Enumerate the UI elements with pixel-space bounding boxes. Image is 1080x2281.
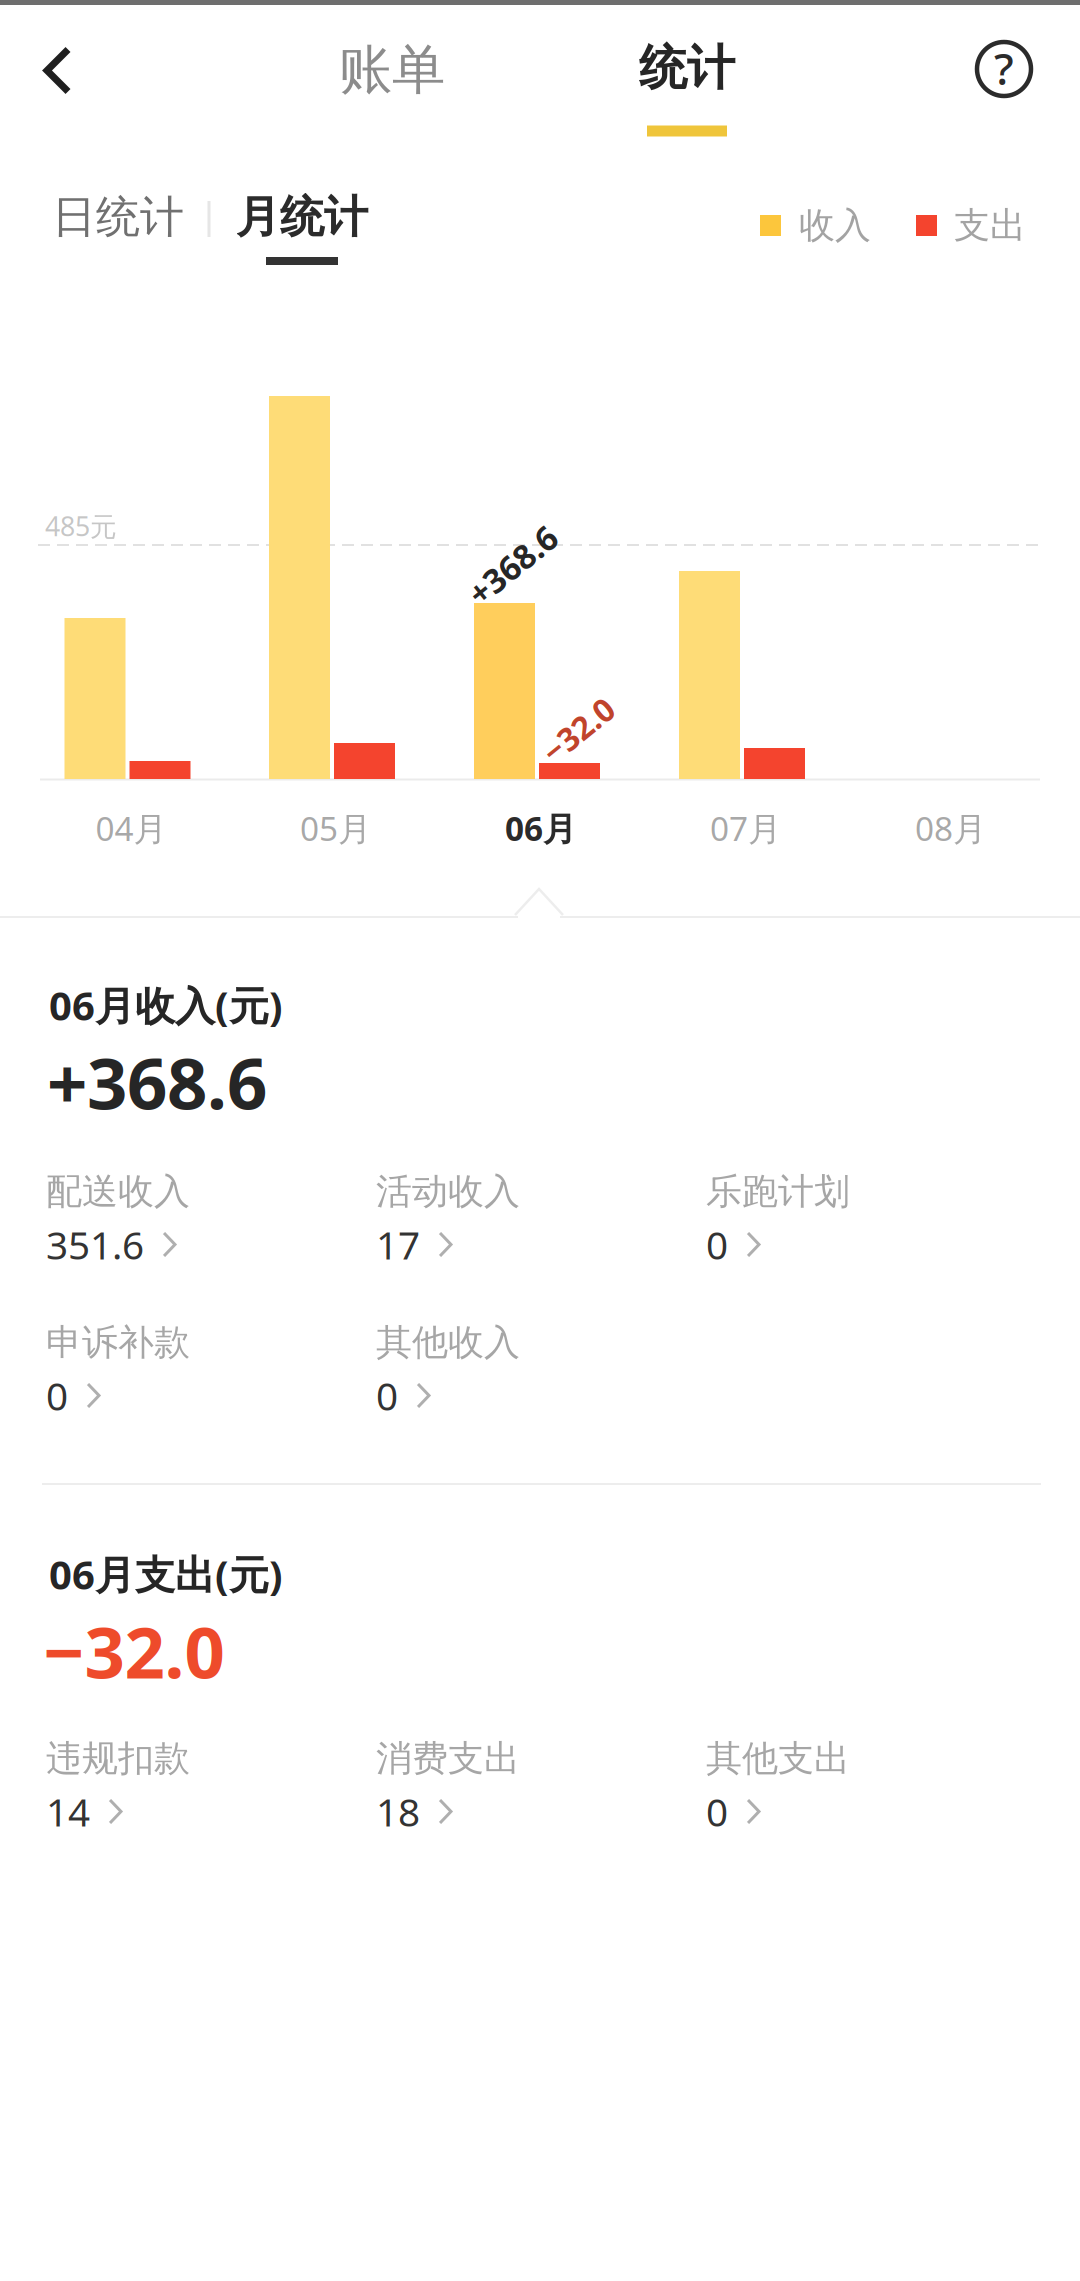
staticText: 申诉补款: [46, 1320, 190, 1365]
staticText: 0: [46, 1370, 68, 1421]
staticText: 06月: [505, 806, 576, 850]
staticText: 06月支出(元): [49, 1547, 283, 1600]
staticText: 日统计: [52, 190, 184, 244]
staticText: −32.0: [537, 709, 619, 751]
staticText: 活动收入: [376, 1169, 520, 1214]
button[interactable]: 配送收入: [46, 1169, 346, 1264]
staticText: 支出: [954, 203, 1026, 248]
staticText: 485元: [45, 508, 117, 544]
staticText: 18: [376, 1786, 420, 1837]
staticText: 05月: [300, 806, 371, 850]
staticText: 其他收入: [376, 1320, 520, 1365]
button[interactable]: Help: [949, 14, 1059, 124]
staticText: 17: [376, 1219, 420, 1270]
staticText: 351.6: [46, 1219, 144, 1270]
staticText: +368.6: [460, 543, 564, 587]
staticText: 0: [376, 1370, 398, 1421]
button[interactable]: 月统计: [217, 170, 387, 290]
staticText: −32.0: [43, 1604, 224, 1698]
button[interactable]: 其他收入: [376, 1320, 676, 1415]
button[interactable]: 违规扣款: [46, 1736, 346, 1831]
button[interactable]: 乐跑计划: [706, 1169, 1006, 1264]
button[interactable]: 申诉补款: [46, 1320, 346, 1415]
staticText: 0: [706, 1219, 728, 1270]
staticText: ?: [994, 39, 1014, 97]
button[interactable]: 其他支出: [706, 1736, 1006, 1831]
button[interactable]: 活动收入: [376, 1169, 676, 1264]
staticText: 收入: [799, 203, 871, 248]
staticText: 月统计: [236, 190, 368, 244]
staticText: 06月收入(元): [49, 978, 283, 1031]
staticText: 14: [46, 1786, 90, 1837]
staticText: 账单: [339, 37, 445, 103]
staticText: 07月: [710, 806, 781, 850]
staticText: 04月: [95, 806, 166, 850]
staticText: 08月: [915, 806, 986, 850]
staticText: +368.6: [47, 1035, 267, 1129]
staticText: 违规扣款: [46, 1736, 190, 1781]
staticText: 统计: [639, 38, 735, 97]
button[interactable]: Back: [2, 15, 112, 125]
staticText: 配送收入: [46, 1169, 190, 1214]
button[interactable]: 账单: [302, 15, 482, 125]
staticText: 消费支出: [376, 1736, 520, 1781]
button[interactable]: 消费支出: [376, 1736, 676, 1831]
button[interactable]: 日统计: [38, 171, 198, 263]
staticText: 0: [706, 1786, 728, 1837]
button[interactable]: 统计: [597, 15, 777, 147]
staticText: 其他支出: [706, 1736, 850, 1781]
staticText: 乐跑计划: [706, 1169, 850, 1214]
